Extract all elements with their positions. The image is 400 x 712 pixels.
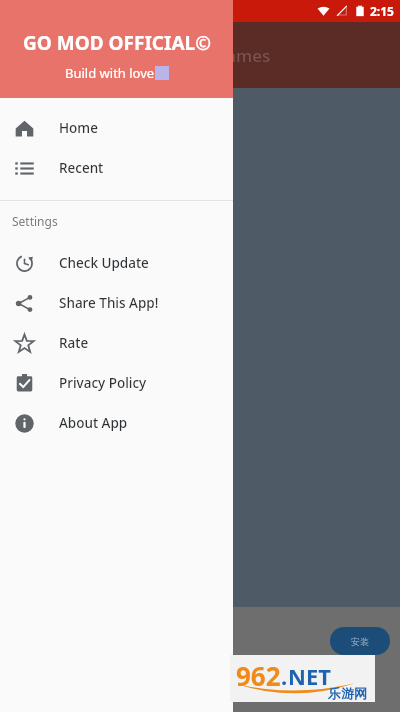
staticText: 962 [236, 658, 281, 693]
staticText: 安装 [351, 636, 369, 647]
button[interactable]: 安装 [330, 627, 390, 655]
button[interactable]: Share This App! [0, 283, 233, 323]
staticText: Home [59, 119, 98, 137]
button[interactable]: Home [0, 108, 233, 148]
staticText: 2:15 [370, 3, 394, 19]
staticText: About App [59, 414, 128, 432]
staticText: Recent [59, 159, 104, 177]
staticText: GO MOD OFFICIAL© [23, 30, 211, 56]
staticText: Share This App! [59, 294, 159, 312]
staticText: Games [214, 44, 271, 67]
staticText: Privacy Policy [59, 374, 147, 392]
button[interactable]: Recent [0, 148, 233, 188]
button[interactable]: Privacy Policy [0, 363, 233, 403]
staticText: Check Update [59, 254, 149, 272]
staticText: NET [288, 661, 331, 691]
staticText: . [281, 661, 288, 691]
button[interactable]: About App [0, 403, 233, 443]
staticText: Build with love [65, 64, 155, 82]
button[interactable]: Rate [0, 323, 233, 363]
staticText: Rate [59, 334, 89, 352]
button[interactable]: Check Update [0, 243, 233, 283]
staticText: Settings [12, 213, 58, 229]
staticText: 乐游网 [328, 685, 367, 701]
